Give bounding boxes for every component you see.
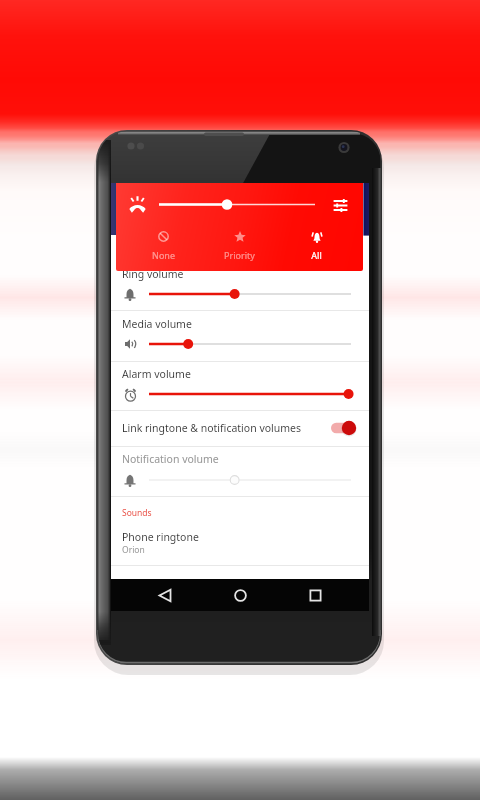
staticText: Phone ringtone: [122, 530, 199, 544]
button[interactable]: Priority: [198, 224, 280, 270]
button[interactable]: All: [275, 224, 357, 270]
staticText: Media volume: [122, 317, 192, 331]
staticText: Ring volume: [122, 267, 184, 281]
staticText: Alarm volume: [122, 367, 191, 381]
button[interactable]: Recent apps: [289, 579, 341, 611]
button[interactable]: Link ringtone & notification volumes: [111, 410, 369, 446]
staticText: Notification volume: [122, 452, 219, 466]
staticText: None: [152, 249, 175, 261]
button[interactable]: Home: [214, 579, 266, 611]
button[interactable]: [111, 262, 369, 306]
button[interactable]: [111, 312, 369, 356]
staticText: All: [311, 249, 322, 261]
button[interactable]: Ringer mode: [129, 196, 146, 213]
button[interactable]: [111, 362, 369, 406]
staticText: Orion: [122, 544, 145, 556]
button[interactable]: None: [122, 224, 204, 270]
button[interactable]: Tune sound settings: [333, 198, 348, 213]
button[interactable]: [111, 526, 369, 564]
button[interactable]: [111, 447, 369, 492]
staticText: Link ringtone & notification volumes: [122, 421, 302, 435]
staticText: Sounds: [122, 507, 152, 519]
button[interactable]: Back: [139, 579, 191, 611]
staticText: Priority: [224, 249, 255, 261]
